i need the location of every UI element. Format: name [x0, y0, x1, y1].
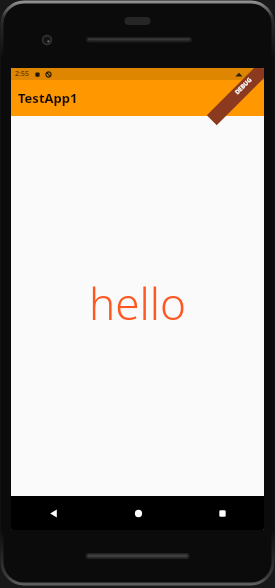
button[interactable]: Recent apps [180, 496, 264, 530]
staticText: hello [89, 273, 186, 333]
button[interactable]: Home [96, 496, 180, 530]
button[interactable]: TestApp1 [11, 80, 264, 116]
staticText: DEBUG [233, 76, 254, 96]
staticText: 2:55 [15, 69, 29, 79]
staticText: TestApp1 [18, 89, 78, 107]
button[interactable]: Back [11, 496, 96, 530]
